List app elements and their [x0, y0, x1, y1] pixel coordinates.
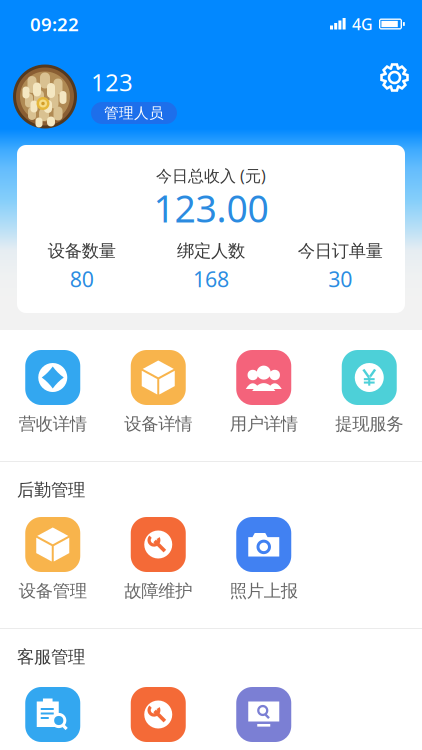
button[interactable]	[211, 687, 316, 742]
button[interactable]: 故障维护	[105, 517, 211, 602]
staticText: 营收详情	[19, 413, 87, 435]
staticText: 168	[193, 265, 229, 293]
button[interactable]: 照片上报	[211, 517, 316, 602]
button[interactable]	[105, 687, 211, 742]
staticText: 今日订单量	[298, 240, 383, 262]
staticText: 故障维护	[124, 580, 192, 602]
staticText: 30	[328, 265, 352, 293]
staticText: 4G	[352, 13, 373, 35]
staticText: 后勤管理	[17, 479, 85, 501]
button[interactable]: Settings	[380, 63, 409, 92]
button[interactable]: 提现服务	[316, 350, 422, 435]
staticText: 09:22	[30, 12, 79, 36]
staticText: 绑定人数	[177, 240, 245, 262]
staticText: 提现服务	[335, 413, 403, 435]
staticText: 设备管理	[19, 580, 87, 602]
staticText: 123.00	[153, 183, 268, 233]
staticText: 设备数量	[48, 240, 116, 262]
button[interactable]: 用户详情	[211, 350, 316, 435]
staticText: 80	[70, 265, 94, 293]
button[interactable]: 设备管理	[0, 517, 105, 602]
staticText: 设备详情	[124, 413, 192, 435]
button[interactable]: 设备详情	[105, 350, 211, 435]
staticText: 照片上报	[230, 580, 298, 602]
staticText: 客服管理	[17, 646, 85, 668]
button[interactable]: 营收详情	[0, 350, 105, 435]
button[interactable]	[0, 687, 105, 742]
staticText: 今日总收入 (元)	[156, 165, 266, 186]
staticText: 用户详情	[230, 413, 298, 435]
staticText: 管理人员	[104, 104, 164, 122]
staticText: 123	[91, 66, 133, 98]
